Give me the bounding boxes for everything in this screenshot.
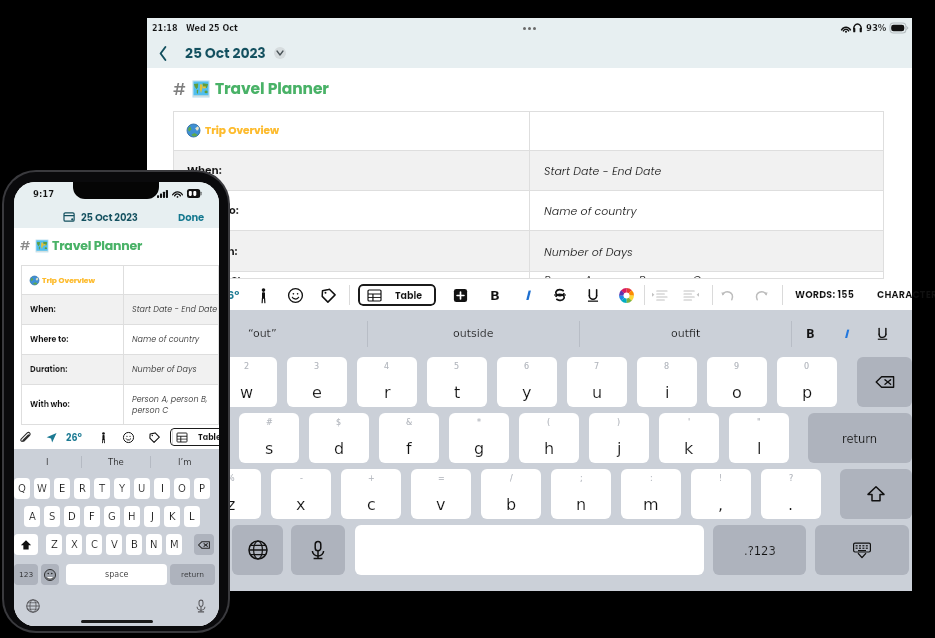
button[interactable]: 1 [147,357,207,407]
button[interactable]: = [411,469,471,519]
button[interactable]: @ [169,413,229,463]
button[interactable]: ) [589,413,649,463]
button[interactable]: Z [46,534,62,555]
button[interactable]: C [86,534,102,555]
button[interactable]: 0 [777,357,837,407]
button[interactable]: Back [151,41,175,65]
button[interactable]: U [134,478,150,499]
button[interactable]: Person [252,284,274,306]
button[interactable]: Shift [14,534,38,555]
button[interactable]: ? [761,469,821,519]
button[interactable]: I [516,284,538,306]
button[interactable]: space [66,564,167,585]
button[interactable]: The [82,449,150,475]
button[interactable] [864,327,900,340]
button[interactable]: & [379,413,439,463]
button[interactable]: O [174,478,190,499]
button[interactable]: Strikethrough [549,284,571,306]
button[interactable]: 4 [357,357,417,407]
button[interactable]: 5 [427,357,487,407]
button[interactable]: N [146,534,162,555]
button[interactable]: Emoji [284,284,306,306]
button[interactable]: E [54,478,70,499]
button[interactable]: W [34,478,50,499]
button[interactable]: Colour [615,284,637,306]
button[interactable]: Shift [840,469,912,519]
button[interactable]: Outdent [680,284,702,306]
button[interactable]: ! [691,469,751,519]
button[interactable]: - [271,469,331,519]
button[interactable]: Dictate [194,599,208,613]
button[interactable]: Add [449,284,471,306]
button[interactable]: Backspace [857,357,912,407]
button[interactable]: Person [96,430,110,444]
button[interactable]: 8 [637,357,697,407]
button[interactable]: 3 [287,357,347,407]
button[interactable]: Q [14,478,30,499]
button[interactable]: B [126,534,142,555]
button[interactable]: I [154,478,170,499]
button[interactable]: Redo [749,284,771,306]
button[interactable]: L [184,506,200,527]
button[interactable]: % [201,469,261,519]
button[interactable]: A [24,506,40,527]
button[interactable]: # [239,413,299,463]
button[interactable]: M [166,534,182,555]
button[interactable]: Attach [157,284,179,306]
button[interactable]: X [66,534,82,555]
button[interactable]: Return [170,564,215,585]
button[interactable]: Done [176,208,207,226]
button[interactable]: Table [170,428,219,446]
button[interactable]: 7 [567,357,627,407]
button[interactable]: S [44,506,60,527]
button[interactable]: F [84,506,100,527]
button[interactable]: Dictate [291,525,345,575]
button[interactable]: Globe [232,525,283,575]
button[interactable]: B [484,284,506,306]
button[interactable]: D [64,506,80,527]
button[interactable]: Undo [717,284,739,306]
button[interactable]: P [194,478,210,499]
button[interactable]: ( [519,413,579,463]
button[interactable]: / [481,469,541,519]
button[interactable]: 25 Oct 2023 [185,39,286,67]
button[interactable]: Indent [648,284,670,306]
button[interactable]: J [144,506,160,527]
button[interactable]: Emoji [121,430,135,444]
button[interactable]: Globe [26,599,40,613]
button[interactable]: Underline [582,284,604,306]
button[interactable]: T [94,478,110,499]
button[interactable]: Tag [317,284,339,306]
button[interactable]: Y [114,478,130,499]
button[interactable]: Attach [18,430,32,444]
button[interactable]: Emoji [41,564,59,585]
button[interactable]: + [341,469,401,519]
button[interactable]: Tag [147,430,161,444]
button[interactable]: ' [659,413,719,463]
button[interactable]: V [106,534,122,555]
button[interactable]: I [828,327,864,340]
button[interactable]: 2 [217,357,277,407]
button[interactable]: I [14,449,81,475]
button[interactable]: G [104,506,120,527]
button[interactable]: H [124,506,140,527]
button[interactable]: 25 Oct 2023 [62,208,140,226]
button[interactable]: 6 [497,357,557,407]
button[interactable]: R [74,478,90,499]
button[interactable]: ; [551,469,611,519]
button[interactable]: Backspace [194,534,214,555]
button[interactable]: " [729,413,789,463]
button[interactable]: Return [808,413,912,463]
button[interactable]: Numbers [713,525,806,575]
button[interactable]: I’m [151,449,219,475]
button[interactable]: Location [193,284,215,306]
button[interactable]: 9 [707,357,767,407]
button[interactable]: Location [44,430,58,444]
button[interactable]: * [449,413,509,463]
button[interactable]: : [621,469,681,519]
button[interactable]: B [792,327,828,340]
button[interactable]: Hide keyboard [815,525,909,575]
button[interactable]: Numbers [14,564,38,585]
button[interactable]: Table [358,284,436,306]
